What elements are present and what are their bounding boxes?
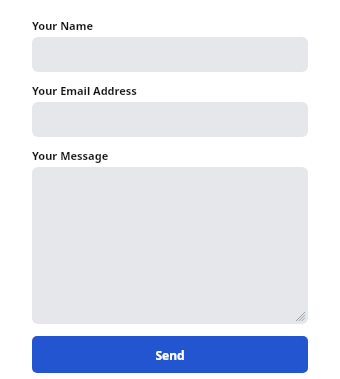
staticText: Your Message [32,148,109,163]
button[interactable]: Send [32,336,308,373]
staticText: Your Email Address [32,83,137,98]
staticText: Your Name [32,18,93,33]
staticText: Send [155,347,185,363]
